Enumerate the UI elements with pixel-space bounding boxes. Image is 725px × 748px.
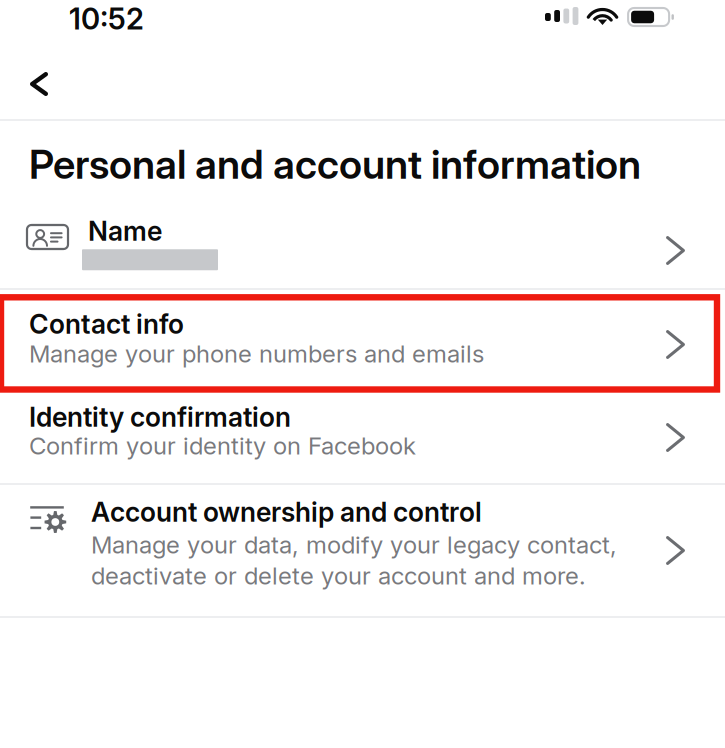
button[interactable]: Account ownership and control — [0, 485, 725, 616]
staticText: 10:52 — [69, 1, 144, 36]
staticText: Account ownership and control — [91, 496, 482, 528]
staticText: Contact info — [29, 308, 184, 340]
staticText: Identity confirmation — [29, 401, 291, 433]
button[interactable]: Back — [0, 44, 108, 119]
staticText: Manage your data, modify your legacy con… — [91, 530, 617, 559]
staticText: Personal and account information — [29, 140, 641, 188]
button[interactable]: Identity confirmation — [0, 392, 725, 483]
button[interactable]: Contact info — [0, 290, 725, 392]
staticText: deactivate or delete your account and mo… — [91, 561, 586, 590]
button[interactable]: Name — [0, 196, 725, 288]
staticText: Manage your phone numbers and emails — [29, 339, 484, 368]
staticText: Name — [88, 215, 162, 247]
staticText: Confirm your identity on Facebook — [29, 431, 416, 460]
